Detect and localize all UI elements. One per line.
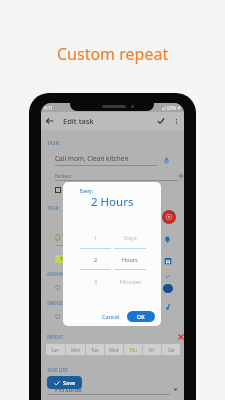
button[interactable]: Remove repeat — [178, 334, 184, 340]
staticText: ADVANCED — [47, 271, 71, 277]
button[interactable]: More options — [169, 114, 183, 128]
staticText: 3 — [94, 278, 98, 285]
staticText: Days — [124, 234, 137, 241]
button[interactable]: OK — [127, 311, 155, 322]
staticText: Edit task — [63, 116, 94, 126]
staticText: 01 — [55, 231, 66, 244]
staticText: Minutes — [120, 278, 141, 285]
button[interactable]: Sat — [162, 344, 180, 355]
button[interactable]: Mon — [66, 344, 85, 355]
staticText: 65% — [167, 105, 176, 111]
staticText: Notes: — [55, 172, 72, 179]
button[interactable]: Sun — [46, 344, 65, 355]
staticText: TASK: — [47, 205, 61, 212]
staticText: Wed — [109, 347, 119, 353]
staticText: Sun — [51, 347, 60, 353]
button[interactable]: Thu — [124, 344, 142, 355]
staticText: SNOOZE — [47, 300, 66, 306]
button[interactable]: Save — [153, 113, 169, 129]
button[interactable]: 2 — [80, 249, 111, 269]
staticText: OK — [137, 313, 145, 320]
staticText: REPEAT — [47, 334, 63, 340]
staticText: Thu — [129, 347, 138, 353]
button[interactable]: Hours — [114, 249, 146, 269]
button[interactable]: Tue — [86, 344, 104, 355]
staticText: Fri — [149, 347, 155, 353]
staticText: Mon — [71, 347, 81, 353]
staticText: 2 — [94, 256, 98, 263]
staticText: Every: — [80, 188, 93, 194]
staticText: Cancel — [102, 313, 120, 320]
button[interactable]: Save — [47, 376, 82, 389]
button[interactable]: Fri — [143, 344, 161, 355]
button[interactable]: Wed — [105, 344, 123, 355]
button[interactable]: Cancel — [98, 311, 124, 322]
staticText: TASK LIST — [47, 367, 68, 373]
staticText: Custom repeat — [57, 43, 169, 65]
button[interactable]: Back — [42, 113, 58, 129]
staticText: TASK: — [47, 140, 61, 147]
staticText: Call mom, Clean kitchen — [55, 154, 129, 163]
staticText: Sat — [168, 347, 175, 353]
staticText: 2 Hours — [91, 194, 134, 210]
staticText: Tue — [91, 347, 99, 353]
staticText: Save — [63, 379, 76, 386]
staticText: Personal — [55, 385, 82, 394]
staticText: Hours — [122, 256, 138, 263]
staticText: 1 — [94, 234, 98, 241]
staticText: 4:11 — [44, 105, 53, 111]
staticText: TH — [60, 256, 66, 262]
